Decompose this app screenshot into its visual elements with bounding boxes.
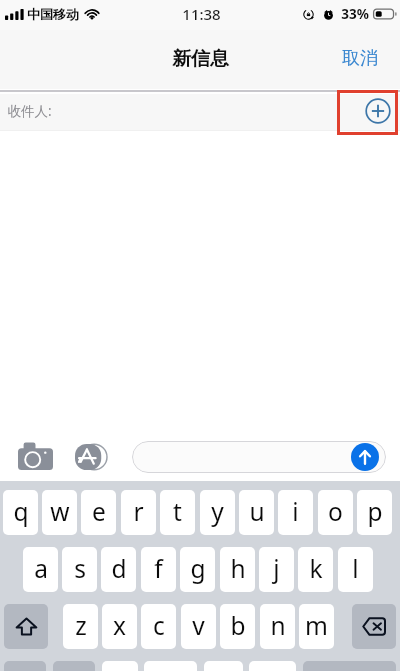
button[interactable]: t (160, 490, 195, 535)
staticText: h (230, 552, 246, 585)
button[interactable]: h (220, 547, 255, 592)
staticText: e (92, 495, 106, 528)
staticText: y (211, 495, 224, 528)
button[interactable]: Add contact (365, 98, 391, 124)
button[interactable]: n (260, 604, 295, 649)
button[interactable]: s (62, 547, 97, 592)
button[interactable]: k (298, 547, 333, 592)
button[interactable]: p (357, 490, 392, 535)
button[interactable]: u (239, 490, 274, 535)
staticText: t (173, 495, 182, 528)
button[interactable]: e (81, 490, 116, 535)
button[interactable]: Camera (18, 442, 53, 470)
button[interactable]: f (141, 547, 176, 592)
staticText: p (367, 495, 383, 528)
button[interactable]: Language (102, 661, 138, 671)
staticText: 11:38 (182, 4, 221, 24)
button[interactable]: Backspace (352, 604, 396, 649)
staticText: z (75, 609, 87, 642)
staticText: a (34, 552, 48, 585)
button[interactable]: Shift (4, 604, 48, 649)
button[interactable]: App Store (75, 441, 107, 473)
button[interactable]: g (180, 547, 215, 592)
button[interactable]: i (278, 490, 313, 535)
button[interactable]: x (102, 604, 137, 649)
button[interactable]: Send (351, 443, 379, 471)
staticText: 新信息 (172, 47, 229, 71)
button[interactable]: b (220, 604, 255, 649)
button[interactable]: d (101, 547, 136, 592)
button[interactable]: Message input (132, 441, 386, 473)
button[interactable]: y (200, 490, 235, 535)
button[interactable]: Space (144, 661, 197, 671)
staticText: u (249, 495, 265, 528)
button[interactable]: o (318, 490, 353, 535)
staticText: n (270, 609, 286, 642)
button[interactable]: m (299, 604, 334, 649)
staticText: o (328, 495, 343, 528)
staticText: s (74, 552, 86, 585)
button[interactable]: l (338, 547, 373, 592)
staticText: d (111, 552, 127, 585)
button[interactable]: a (23, 547, 58, 592)
button[interactable]: v (181, 604, 216, 649)
staticText: l (352, 552, 359, 585)
staticText: 取消 (342, 47, 378, 70)
button[interactable]: z (63, 604, 98, 649)
staticText: b (230, 609, 246, 642)
button[interactable]: w (42, 490, 77, 535)
staticText: m (305, 609, 328, 642)
staticText: g (190, 552, 206, 585)
button[interactable]: q (3, 490, 38, 535)
button[interactable]: Emoji (53, 661, 95, 671)
staticText: 中国移动 (27, 6, 79, 22)
staticText: c (153, 609, 165, 642)
staticText: k (309, 552, 323, 585)
button[interactable]: 取消 (328, 39, 400, 78)
staticText: r (133, 495, 144, 528)
button[interactable]: Period (249, 661, 296, 671)
staticText: 33% (341, 5, 369, 23)
staticText: j (273, 552, 280, 585)
button[interactable]: c (141, 604, 176, 649)
staticText: 收件人: (7, 102, 52, 120)
staticText: q (13, 495, 29, 528)
staticText: v (192, 609, 205, 642)
button[interactable]: j (259, 547, 294, 592)
staticText: i (292, 495, 299, 528)
staticText: f (154, 552, 163, 585)
staticText: w (50, 495, 70, 528)
button[interactable]: Comma (204, 661, 243, 671)
button[interactable]: Numbers (4, 661, 46, 671)
staticText: x (113, 609, 126, 642)
button[interactable]: r (121, 490, 156, 535)
